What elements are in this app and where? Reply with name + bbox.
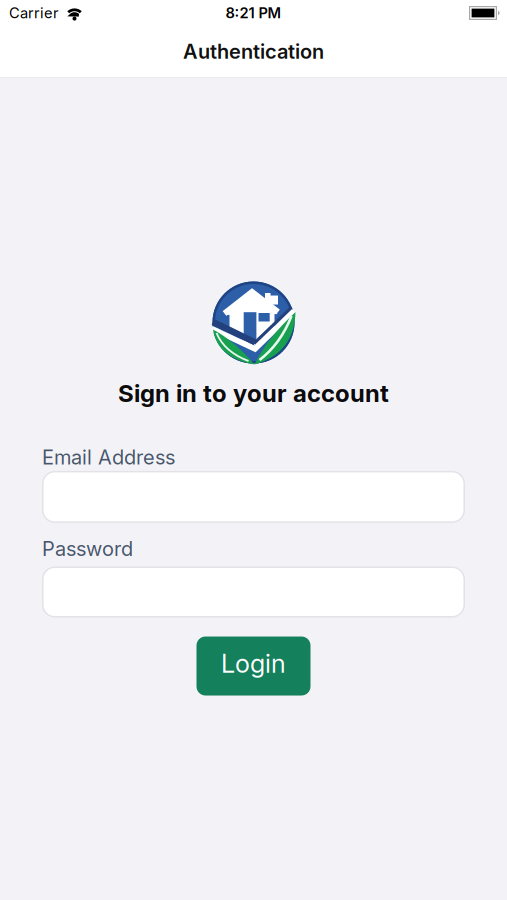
staticText: Login	[221, 649, 286, 678]
staticText: 8:21 PM	[225, 4, 281, 22]
staticText: Email Address	[42, 445, 175, 469]
staticText: Sign in to your account	[118, 379, 389, 407]
staticText: Authentication	[183, 40, 324, 63]
button[interactable]: Login	[196, 636, 310, 695]
staticText: Carrier	[9, 4, 59, 22]
staticText: Password	[42, 537, 133, 560]
